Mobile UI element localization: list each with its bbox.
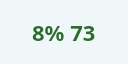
staticText: 8% 73 [32,17,96,47]
